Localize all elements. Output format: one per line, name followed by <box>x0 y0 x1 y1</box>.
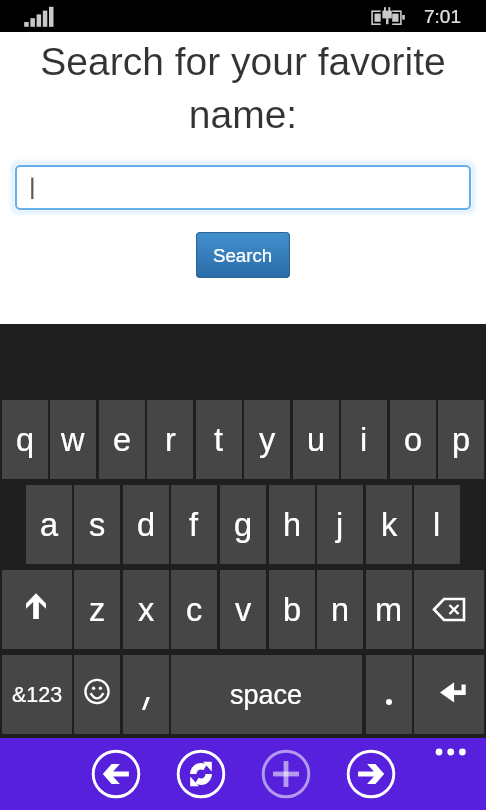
staticText: Search <box>213 245 273 266</box>
button[interactable]: a <box>26 485 72 564</box>
button[interactable]: d <box>123 485 169 564</box>
staticText: o <box>404 422 423 458</box>
button[interactable]: Add <box>257 745 315 803</box>
staticText: u <box>307 422 326 458</box>
button[interactable]: h <box>269 485 315 564</box>
staticText: y <box>259 422 276 458</box>
button[interactable]: c <box>171 570 217 649</box>
staticText: v <box>235 592 252 628</box>
button[interactable]: g <box>220 485 266 564</box>
staticText: p <box>452 422 471 458</box>
button[interactable]: f <box>171 485 217 564</box>
staticText: n <box>331 592 350 628</box>
staticText: x <box>138 592 155 628</box>
staticText: f <box>189 507 199 543</box>
staticText: k <box>381 507 398 543</box>
button[interactable]: Backspace <box>414 570 484 649</box>
staticText: &123 <box>12 683 63 707</box>
button[interactable]: u <box>293 400 339 479</box>
button[interactable]: j <box>317 485 363 564</box>
staticText: z <box>89 592 106 628</box>
button[interactable]: t <box>196 400 242 479</box>
button[interactable]: r <box>147 400 193 479</box>
button[interactable]: Back <box>87 745 145 803</box>
staticText: space <box>230 680 303 710</box>
button[interactable]: Search <box>196 232 290 278</box>
button[interactable]: o <box>390 400 436 479</box>
button[interactable]: s <box>74 485 120 564</box>
staticText: i <box>360 422 368 458</box>
button[interactable]: y <box>244 400 290 479</box>
button[interactable]: i <box>341 400 387 479</box>
staticText: d <box>137 507 156 543</box>
staticText: g <box>234 507 253 543</box>
button[interactable]: n <box>317 570 363 649</box>
staticText: Search for your favorite name: <box>20 40 466 137</box>
button[interactable]: Search text field <box>7 157 479 218</box>
staticText: t <box>214 422 224 458</box>
button[interactable]: k <box>366 485 412 564</box>
staticText: m <box>375 592 403 628</box>
button[interactable]: q <box>2 400 48 479</box>
staticText: b <box>283 592 302 628</box>
button[interactable]: Refresh <box>172 745 230 803</box>
button[interactable]: More options <box>424 738 486 768</box>
staticText: w <box>61 422 85 458</box>
staticText: c <box>186 592 203 628</box>
staticText: 7:01 <box>424 6 461 27</box>
button[interactable]: Enter <box>414 655 484 734</box>
staticText: a <box>40 507 59 543</box>
button[interactable]: space <box>171 655 362 734</box>
staticText: e <box>113 422 132 458</box>
staticText: j <box>336 507 344 543</box>
staticText: l <box>433 507 441 543</box>
button[interactable]: w <box>50 400 96 479</box>
button[interactable]: &123 <box>2 655 72 734</box>
button[interactable]: Forward <box>342 745 400 803</box>
button[interactable]: l <box>414 485 460 564</box>
staticText: s <box>89 507 106 543</box>
button[interactable]: Comma <box>123 655 169 734</box>
staticText: r <box>165 422 176 458</box>
staticText: q <box>16 422 35 458</box>
staticText: h <box>283 507 302 543</box>
button[interactable]: Shift <box>2 570 72 649</box>
button[interactable]: z <box>74 570 120 649</box>
button[interactable]: Period <box>366 655 412 734</box>
button[interactable]: x <box>123 570 169 649</box>
button[interactable]: v <box>220 570 266 649</box>
button[interactable]: p <box>438 400 484 479</box>
button[interactable]: m <box>366 570 412 649</box>
button[interactable]: Emoji <box>74 655 120 734</box>
button[interactable]: e <box>99 400 145 479</box>
button[interactable]: b <box>269 570 315 649</box>
